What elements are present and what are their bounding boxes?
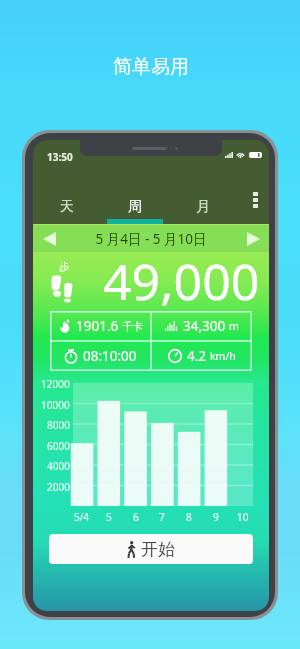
staticText: 6 (133, 510, 139, 524)
staticText: 开始 (141, 539, 175, 560)
button[interactable]: 天 (33, 167, 101, 224)
staticText: 1901.6 (76, 317, 119, 335)
staticText: 8 (186, 510, 192, 524)
staticText: 2000 (47, 480, 70, 494)
staticText: 5 (106, 510, 112, 524)
staticText: 月 (196, 198, 210, 216)
button[interactable]: Next week (237, 225, 269, 252)
staticText: 10 (237, 510, 249, 524)
staticText: 4.2 (187, 347, 207, 365)
staticText: 10000 (41, 398, 70, 412)
button[interactable]: 34,300 (151, 311, 252, 341)
staticText: 5/4 (74, 510, 90, 524)
staticText: m (229, 319, 239, 333)
button[interactable]: Previous week (33, 225, 65, 252)
staticText: 4000 (47, 459, 70, 473)
staticText: 千卡 (122, 320, 143, 333)
staticText: 简单易用 (113, 55, 189, 79)
staticText: 5 月4日 - 5 月10日 (65, 230, 237, 248)
staticText: km/h (210, 349, 236, 363)
staticText: 13:50 (47, 150, 73, 164)
button[interactable]: Previous week (33, 225, 269, 252)
staticText: 34,300 (183, 317, 226, 335)
staticText: 8000 (47, 418, 70, 432)
staticText: 08:10:00 (83, 347, 137, 365)
button[interactable]: 月 (169, 167, 237, 224)
button[interactable]: 4.2 (151, 341, 252, 371)
button[interactable]: 周 (101, 167, 169, 224)
staticText: 周 (128, 198, 142, 216)
staticText: 6000 (47, 439, 70, 453)
staticText: 9 (213, 510, 219, 524)
staticText: 49,000 (103, 247, 260, 315)
staticText: 步 (59, 260, 69, 273)
button[interactable]: More options (237, 167, 269, 224)
button[interactable]: 1901.6 (50, 311, 151, 341)
staticText: 7 (159, 510, 165, 524)
button[interactable]: 开始 (49, 534, 253, 564)
staticText: 天 (60, 198, 74, 216)
button[interactable]: 08:10:00 (50, 341, 151, 371)
staticText: 12000 (41, 377, 70, 391)
